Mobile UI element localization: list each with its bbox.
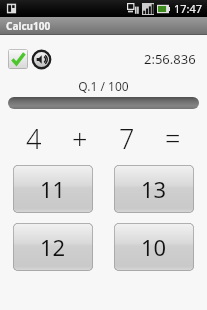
button[interactable]: Sound <box>32 50 51 69</box>
button[interactable]: 10 <box>114 223 194 271</box>
button[interactable] <box>8 49 28 69</box>
staticText: Q.1 / 100 <box>0 78 207 94</box>
button[interactable]: 11 <box>13 165 93 213</box>
staticText: = <box>165 120 181 157</box>
staticText: 7 <box>119 120 135 157</box>
staticText: 4 <box>26 120 42 157</box>
staticText: 17:47 <box>174 1 203 16</box>
button[interactable]: 13 <box>114 165 194 213</box>
button[interactable]: 12 <box>13 223 93 271</box>
staticText: 11 <box>40 174 66 204</box>
staticText: Calcu100 <box>6 19 51 33</box>
staticText: + <box>72 120 88 157</box>
staticText: 13 <box>141 174 167 204</box>
staticText: 10 <box>141 232 167 262</box>
staticText: 12 <box>40 232 66 262</box>
staticText: 2:56.836 <box>144 50 196 68</box>
